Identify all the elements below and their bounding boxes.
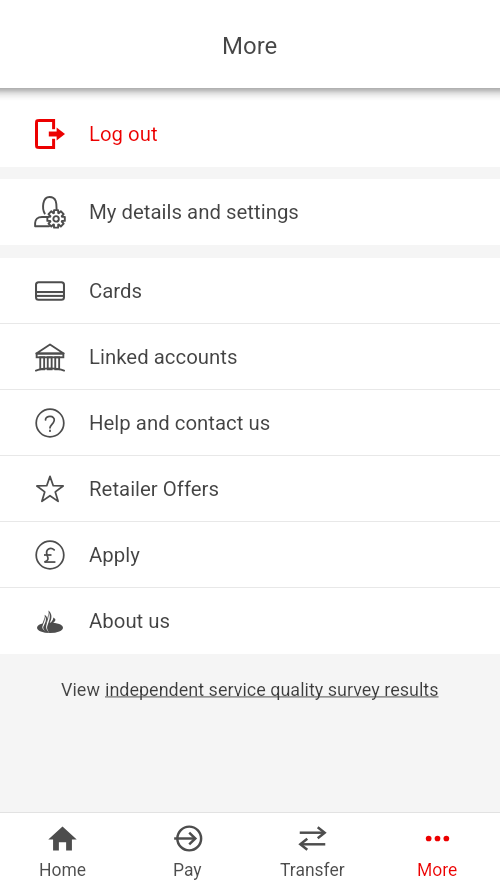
button[interactable]: More bbox=[375, 816, 500, 889]
button[interactable]: independent service quality survey resul… bbox=[105, 679, 439, 700]
button[interactable]: Apply bbox=[0, 522, 500, 588]
button[interactable]: Cards bbox=[0, 258, 500, 324]
other: Transfer bbox=[298, 824, 327, 853]
staticText: More bbox=[222, 32, 278, 60]
staticText: Linked accounts bbox=[89, 345, 238, 369]
staticText: Log out bbox=[89, 122, 158, 146]
button[interactable]: About us bbox=[0, 588, 500, 654]
other: More bbox=[423, 824, 452, 853]
staticText: Transfer bbox=[280, 860, 345, 881]
staticText: Help and contact us bbox=[89, 411, 271, 435]
staticText: Retailer Offers bbox=[89, 477, 220, 501]
button[interactable]: Linked accounts bbox=[0, 324, 500, 390]
other: Pay bbox=[173, 824, 202, 853]
other: Home bbox=[48, 824, 77, 853]
button[interactable]: Retailer Offers bbox=[0, 456, 500, 522]
button[interactable]: Transfer bbox=[250, 816, 375, 889]
staticText: Apply bbox=[89, 543, 140, 567]
staticText: About us bbox=[89, 609, 171, 633]
button[interactable]: Log out bbox=[0, 101, 500, 167]
button[interactable]: Pay bbox=[125, 816, 250, 889]
staticText: More bbox=[417, 860, 458, 881]
button[interactable]: Home bbox=[0, 816, 125, 889]
staticText: Home bbox=[39, 860, 87, 881]
staticText: View bbox=[61, 679, 105, 700]
staticText: Cards bbox=[89, 279, 143, 303]
button[interactable]: Help and contact us bbox=[0, 390, 500, 456]
staticText: My details and settings bbox=[89, 200, 299, 224]
button[interactable]: My details and settings bbox=[0, 179, 500, 245]
staticText: Pay bbox=[173, 860, 202, 881]
